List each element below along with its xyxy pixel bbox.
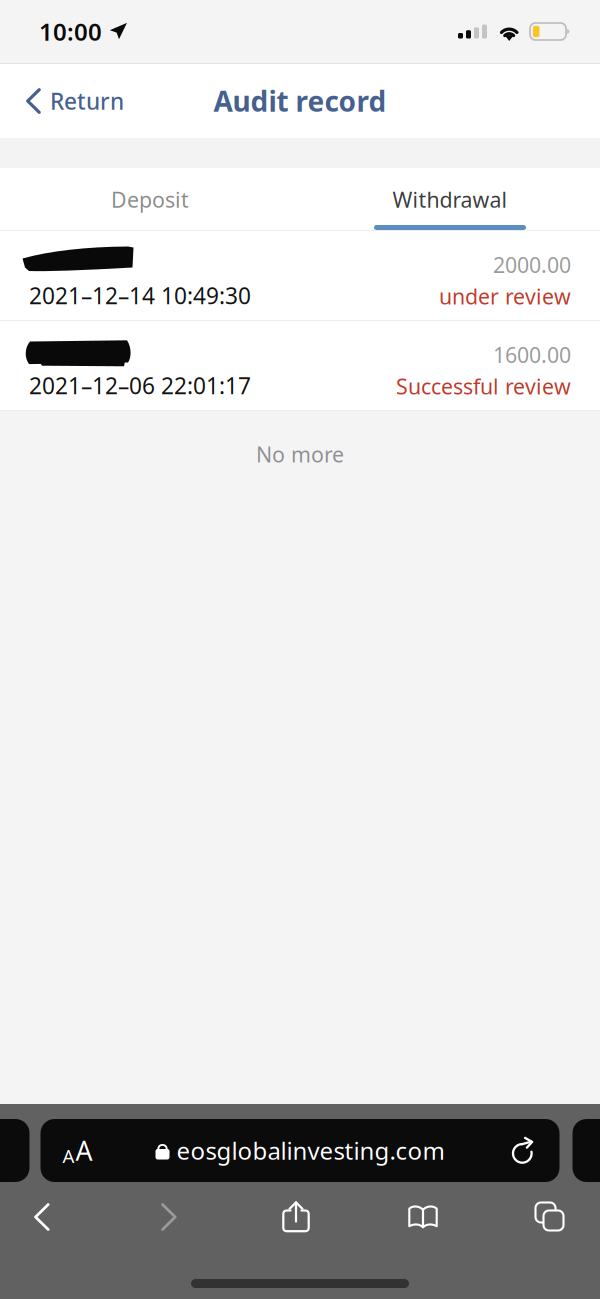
- staticText: 1600.00: [493, 340, 571, 369]
- button[interactable]: Deposit: [0, 168, 300, 230]
- button[interactable]: Back: [0, 1188, 84, 1246]
- button[interactable]: Reload: [485, 1119, 559, 1181]
- button[interactable]: Bookmarks: [381, 1188, 465, 1246]
- button[interactable]: Return: [0, 74, 138, 128]
- staticText: 10:00: [39, 16, 102, 47]
- button[interactable]: 2021–12–14 10:49:30: [0, 231, 600, 321]
- staticText: Successful review: [396, 372, 571, 400]
- staticText: Withdrawal: [392, 185, 507, 214]
- button[interactable]: Forward: [127, 1188, 211, 1246]
- button[interactable]: Withdrawal: [300, 168, 600, 230]
- staticText: under review: [439, 282, 571, 310]
- staticText: No more: [256, 440, 344, 468]
- staticText: A: [62, 1143, 74, 1168]
- button[interactable]: Share: [254, 1188, 338, 1246]
- button[interactable]: Tabs: [508, 1188, 592, 1246]
- staticText: eosglobalinvesting.com: [176, 1135, 444, 1166]
- button[interactable]: Page settings: [40, 1119, 114, 1181]
- staticText: Return: [50, 86, 124, 116]
- staticText: 2021–12–06 22:01:17: [29, 370, 251, 400]
- staticText: A: [75, 1133, 92, 1168]
- staticText: Deposit: [111, 185, 189, 214]
- staticText: 2021–12–14 10:49:30: [29, 280, 251, 310]
- staticText: 2000.00: [493, 250, 571, 279]
- staticText: Audit record: [213, 82, 386, 120]
- button[interactable]: 2021–12–06 22:01:17: [0, 321, 600, 411]
